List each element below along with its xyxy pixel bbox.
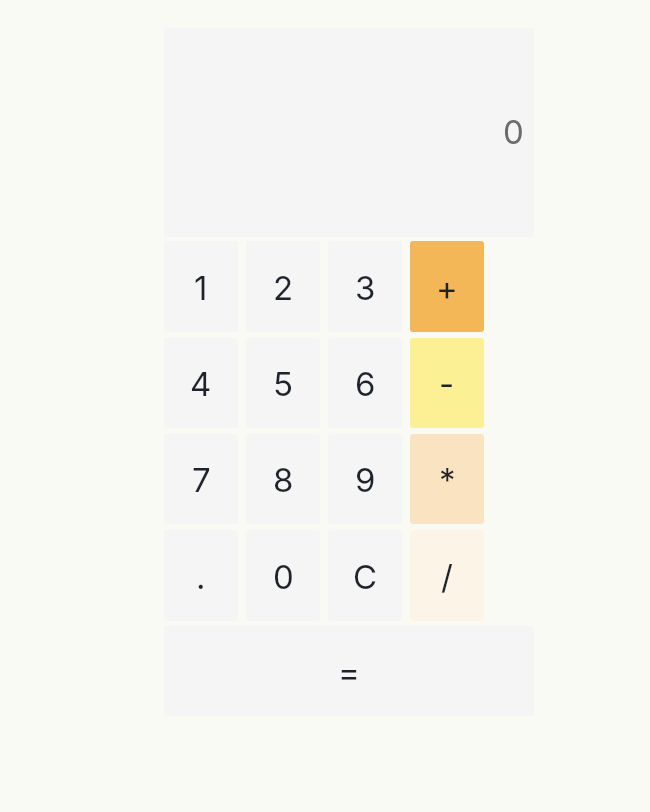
button[interactable]: + (410, 241, 484, 332)
button[interactable]: 3 (328, 241, 402, 332)
staticText: 4 (190, 364, 212, 404)
staticText: 3 (355, 268, 376, 308)
button[interactable]: / (410, 530, 484, 621)
button[interactable]: 5 (246, 338, 320, 428)
button[interactable]: * (410, 434, 484, 524)
staticText: / (441, 557, 453, 597)
button[interactable]: 8 (246, 434, 320, 524)
button[interactable]: C (328, 530, 402, 621)
staticText: + (436, 268, 458, 308)
staticText: . (196, 557, 206, 597)
button[interactable]: 6 (328, 338, 402, 428)
button[interactable]: 4 (164, 338, 238, 428)
staticText: - (439, 364, 455, 404)
staticText: C (353, 557, 378, 597)
button[interactable]: 9 (328, 434, 402, 524)
staticText: * (439, 460, 456, 500)
staticText: = (338, 652, 360, 692)
staticText: 9 (355, 460, 376, 500)
staticText: 0 (273, 557, 294, 597)
staticText: 6 (355, 364, 376, 404)
button[interactable]: = (164, 626, 534, 716)
button[interactable]: 2 (246, 241, 320, 332)
button[interactable]: 7 (164, 434, 238, 524)
button[interactable]: 0 (246, 530, 320, 621)
staticText: 7 (192, 460, 211, 500)
staticText: 2 (273, 268, 294, 308)
staticText: 5 (273, 364, 294, 404)
staticText: 1 (194, 268, 208, 308)
staticText: 8 (273, 460, 294, 500)
button[interactable]: - (410, 338, 484, 428)
button[interactable]: . (164, 530, 238, 621)
staticText: 0 (503, 112, 524, 152)
button[interactable]: 1 (164, 241, 238, 332)
